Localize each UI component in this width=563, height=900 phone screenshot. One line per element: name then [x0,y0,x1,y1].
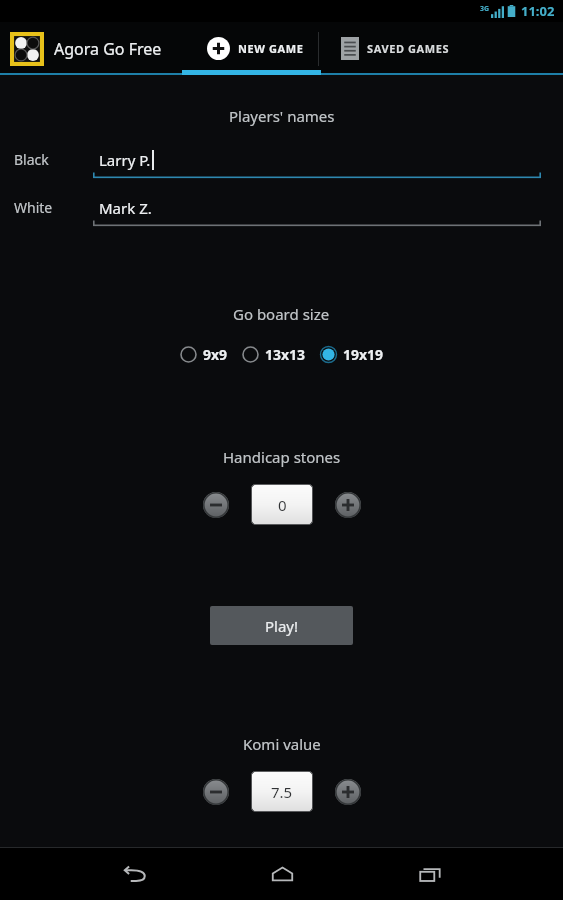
button[interactable]: Play! [210,606,353,645]
staticText: 11:02 [521,2,555,20]
button[interactable]: SAVED GAMES [335,22,456,75]
button[interactable]: Decrease [203,779,229,805]
staticText: Handicap stones [223,447,341,467]
button[interactable]: Decrease [203,492,229,518]
staticText: 0 [278,495,287,515]
staticText: 13x13 [265,345,306,364]
button[interactable]: Increase [335,779,361,805]
staticText: Mark Z. [99,198,152,218]
button[interactable]: NEW GAME [197,22,314,75]
staticText: Go board size [233,304,330,324]
button[interactable]: Mark Z. [93,189,541,226]
staticText: Komi value [243,734,321,754]
button[interactable]: 9x9 [180,341,228,368]
button[interactable]: Agora Go Free [0,22,172,75]
staticText: SAVED GAMES [367,41,450,56]
staticText: 9x9 [203,345,228,364]
staticText: 7.5 [271,782,293,802]
staticText: 19x19 [343,345,384,364]
staticText: Play! [265,616,299,636]
staticText: White [14,198,53,217]
staticText: Black [14,150,49,169]
staticText: Larry P. [99,150,151,170]
button[interactable]: 19x19 [320,341,384,368]
staticText: NEW GAME [238,41,304,56]
button[interactable]: Back [109,849,159,899]
button[interactable]: Home [257,849,307,899]
staticText: Agora Go Free [54,38,162,60]
button[interactable]: 0 [251,484,313,525]
button[interactable]: 7.5 [251,771,313,812]
button[interactable]: Larry P. [93,141,541,178]
staticText: 3G [480,4,490,14]
button[interactable]: Increase [335,492,361,518]
button[interactable]: Recents [405,849,455,899]
staticText: Players' names [229,106,335,126]
button[interactable]: 13x13 [242,341,306,368]
